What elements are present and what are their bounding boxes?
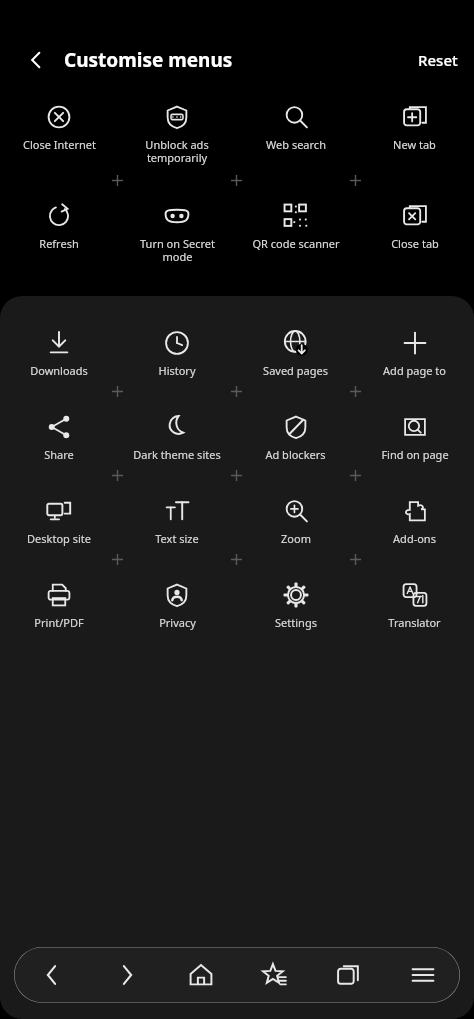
button[interactable]: Close Internet — [0, 96, 118, 175]
button[interactable]: Close tab — [355, 195, 474, 274]
staticText: Add page to — [383, 363, 446, 378]
staticText: Turn on Secret mode — [140, 236, 215, 264]
staticText: Downloads — [30, 363, 88, 378]
button[interactable]: Back — [14, 38, 58, 82]
staticText: Settings — [275, 615, 317, 630]
button[interactable]: Reset — [402, 40, 474, 80]
button[interactable]: History — [118, 322, 236, 386]
button[interactable]: Zoom — [236, 490, 355, 554]
button[interactable]: Home — [164, 947, 238, 1003]
staticText: Refresh — [39, 236, 79, 251]
staticText: Saved pages — [263, 363, 328, 378]
staticText: New tab — [393, 137, 436, 152]
button[interactable]: Translator — [355, 574, 474, 638]
staticText: Unblock ads temporarily — [145, 137, 209, 165]
staticText: Find on page — [381, 447, 449, 462]
button[interactable]: Text size — [118, 490, 236, 554]
button[interactable]: Dark theme sites — [118, 406, 236, 470]
staticText: Close Internet — [23, 137, 96, 152]
button[interactable]: Ad blockers — [236, 406, 355, 470]
button[interactable]: Web search — [236, 96, 355, 175]
button[interactable]: Bookmarks — [238, 947, 312, 1003]
staticText: Zoom — [281, 531, 311, 546]
staticText: Translator — [388, 615, 441, 630]
staticText: QR code scanner — [252, 236, 340, 251]
staticText: Add-ons — [393, 531, 436, 546]
staticText: History — [158, 363, 196, 378]
button[interactable]: QR code scanner — [236, 195, 355, 274]
button[interactable]: Downloads — [0, 322, 118, 386]
staticText: Dark theme sites — [133, 447, 221, 462]
staticText: Share — [44, 447, 74, 462]
staticText: Reset — [418, 50, 458, 70]
button[interactable]: Forward — [89, 947, 164, 1003]
staticText: Customise menus — [64, 47, 233, 73]
button[interactable]: Share — [0, 406, 118, 470]
staticText: Desktop site — [27, 531, 91, 546]
staticText: Text size — [155, 531, 199, 546]
button[interactable]: Print/PDF — [0, 574, 118, 638]
staticText: Close tab — [391, 236, 439, 251]
button[interactable]: Add-ons — [355, 490, 474, 554]
staticText: Privacy — [159, 615, 196, 630]
button[interactable]: Back — [14, 947, 89, 1003]
staticText: Web search — [266, 137, 326, 152]
staticText: Print/PDF — [34, 615, 84, 630]
button[interactable]: Menu — [386, 947, 460, 1003]
button[interactable]: Find on page — [355, 406, 474, 470]
button[interactable]: Unblock ads temporarily — [118, 96, 236, 173]
button[interactable]: Add page to — [355, 322, 474, 386]
button[interactable]: Privacy — [118, 574, 236, 638]
button[interactable]: Settings — [236, 574, 355, 638]
button[interactable]: Saved pages — [236, 322, 355, 386]
button[interactable]: Turn on Secret mode — [118, 195, 236, 272]
button[interactable]: New tab — [355, 96, 474, 175]
staticText: Ad blockers — [265, 447, 326, 462]
button[interactable]: Tabs — [312, 947, 386, 1003]
button[interactable]: Refresh — [0, 195, 118, 274]
button[interactable]: Desktop site — [0, 490, 118, 554]
